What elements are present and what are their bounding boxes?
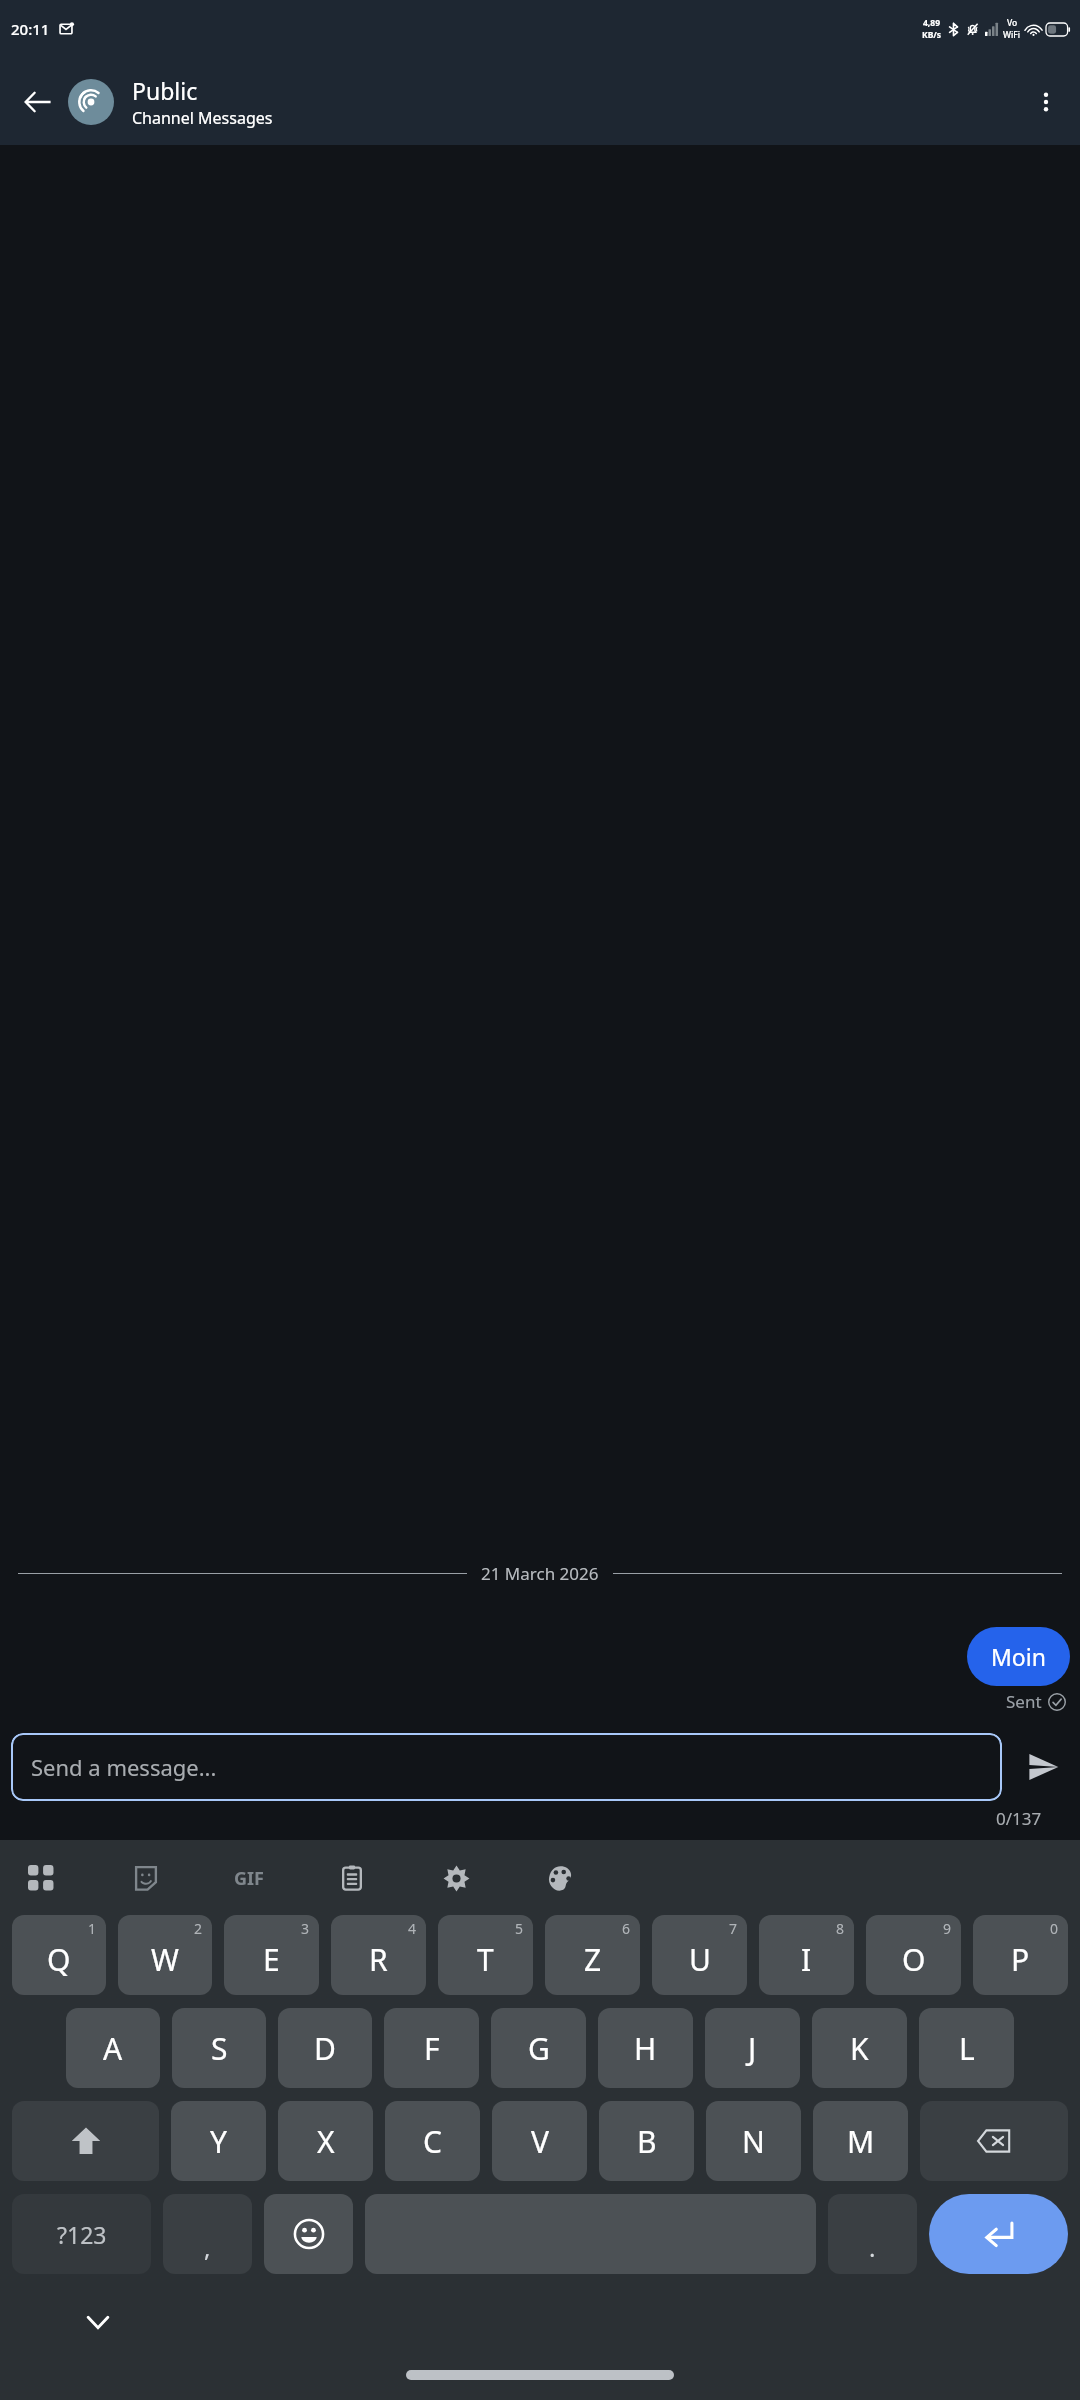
button[interactable]: Themes [534,1852,586,1904]
button[interactable]: Shift [12,2101,159,2181]
staticText: E [263,1939,280,1980]
staticText: 9 [943,1919,952,1938]
button[interactable]: Backspace [920,2101,1068,2181]
staticText: 7 [729,1919,738,1938]
button[interactable]: Settings [430,1852,482,1904]
button[interactable]: V [492,2101,587,2181]
staticText: KB/s [922,29,942,41]
button[interactable]: S [172,2008,266,2088]
button[interactable]: L [919,2008,1014,2088]
button[interactable]: 4 [331,1915,426,1995]
staticText: Q [47,1939,71,1980]
staticText: A [103,2028,123,2069]
button[interactable]: H [598,2008,693,2088]
staticText: GIF [234,1866,264,1891]
button[interactable]: M [813,2101,908,2181]
button[interactable]: 0 [973,1915,1068,1995]
button[interactable]: 5 [438,1915,533,1995]
staticText: 6 [622,1919,631,1938]
staticText: 20:11 [11,19,50,39]
staticText: X [317,2121,335,2162]
staticText: Sent [1006,1690,1042,1713]
button[interactable]: Apps [15,1852,67,1904]
staticText: I [801,1939,812,1980]
staticText: 0 [1050,1919,1059,1938]
staticText: 4,89 [923,17,941,29]
button[interactable]: 2 [118,1915,212,1995]
staticText: . [869,2231,876,2264]
button[interactable]: 3 [224,1915,319,1995]
button[interactable]: Back [14,78,62,126]
staticText: W [151,1939,179,1980]
button[interactable]: Hide keyboard [72,2296,124,2348]
staticText: S [211,2028,228,2069]
button[interactable]: K [812,2008,907,2088]
staticText: 21 March 2026 [481,1562,599,1585]
staticText: Z [584,1939,602,1980]
staticText: Channel Messages [132,107,273,129]
staticText: 2 [194,1919,203,1938]
staticText: L [959,2028,975,2069]
staticText: U [689,1939,711,1980]
staticText: WiFi [1003,29,1021,41]
staticText: , [204,2231,211,2264]
staticText: C [423,2121,442,2162]
button[interactable]: Moin [967,1627,1070,1686]
button[interactable]: 9 [866,1915,961,1995]
button[interactable]: 6 [545,1915,640,1995]
button[interactable]: 8 [759,1915,854,1995]
staticText: O [902,1939,926,1980]
button[interactable]: Send a message... [11,1733,1002,1801]
staticText: Public [132,75,198,106]
staticText: D [314,2028,336,2069]
button[interactable]: 7 [652,1915,747,1995]
staticText: Vo [1007,17,1018,29]
button[interactable]: G [491,2008,586,2088]
button[interactable]: F [384,2008,479,2088]
button[interactable]: ?123 [12,2194,151,2274]
staticText: K [850,2028,869,2069]
button[interactable]: Channel avatar [68,79,114,125]
staticText: 1 [88,1919,97,1938]
button[interactable]: C [385,2101,480,2181]
button[interactable]: . [828,2194,917,2274]
button[interactable]: A [66,2008,160,2088]
button[interactable]: B [599,2101,694,2181]
button[interactable]: Send [1016,1740,1070,1794]
button[interactable]: Stickers [120,1852,172,1904]
staticText: P [1011,1939,1030,1980]
staticText: R [369,1939,388,1980]
staticText: J [748,2028,757,2069]
staticText: Y [210,2121,227,2162]
staticText: Send a message... [31,1752,217,1782]
staticText: T [477,1939,494,1980]
staticText: 5 [515,1919,524,1938]
staticText: 3 [301,1919,310,1938]
button[interactable]: GIF [223,1852,275,1904]
staticText: Moin [991,1641,1046,1672]
staticText: F [424,2028,440,2069]
button[interactable]: D [278,2008,372,2088]
staticText: ?123 [57,2219,107,2250]
button[interactable]: X [278,2101,373,2181]
button[interactable]: Y [171,2101,266,2181]
button[interactable]: , [163,2194,252,2274]
staticText: 8 [836,1919,845,1938]
button[interactable]: Clipboard [326,1852,378,1904]
staticText: 4 [408,1919,417,1938]
staticText: M [847,2121,875,2162]
staticText: G [528,2028,550,2069]
staticText: B [637,2121,657,2162]
staticText: H [634,2028,657,2069]
button[interactable]: 1 [12,1915,106,1995]
staticText: N [742,2121,765,2162]
button[interactable]: Enter [929,2194,1068,2274]
staticText: V [531,2121,549,2162]
staticText: 0/137 [996,1807,1042,1830]
button[interactable]: Emoji [264,2194,353,2274]
button[interactable]: N [706,2101,801,2181]
button[interactable]: J [705,2008,800,2088]
button[interactable]: More options [1024,80,1068,124]
